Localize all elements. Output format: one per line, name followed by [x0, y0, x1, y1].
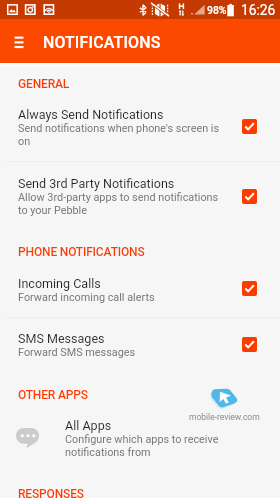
staticText: RESPONSES: [18, 487, 84, 498]
staticText: Configure which apps to receive notifica…: [65, 433, 219, 459]
staticText: PHONE NOTIFICATIONS: [18, 245, 145, 259]
button[interactable]: All Apps: [0, 412, 280, 464]
staticText: SMS Messages: [18, 331, 105, 346]
staticText: OTHER APPS: [18, 388, 88, 402]
button[interactable]: Send 3rd Party Notifications: [0, 170, 280, 230]
staticText: mobile-review.com: [189, 412, 260, 422]
staticText: NOTIFICATIONS: [43, 33, 161, 52]
staticText: Send 3rd Party Notifications: [18, 176, 175, 191]
staticText: Allow 3rd-party apps to send notificatio…: [18, 191, 219, 217]
staticText: 98%: [207, 4, 227, 16]
staticText: Incoming Calls: [18, 276, 101, 291]
staticText: Forward incoming call alerts: [18, 291, 155, 304]
button[interactable]: Always Send Notifications: [0, 101, 280, 161]
staticText: GENERAL: [18, 77, 70, 91]
staticText: Send notifications when phone's screen i…: [18, 122, 220, 148]
button[interactable]: SMS Messages: [0, 325, 280, 372]
staticText: Always Send Notifications: [18, 107, 164, 122]
button[interactable]: Open navigation menu: [5, 28, 33, 56]
button[interactable]: Incoming Calls: [0, 270, 280, 317]
staticText: 16:26: [241, 2, 276, 18]
staticText: All Apps: [65, 418, 112, 433]
staticText: Forward SMS messages: [18, 346, 136, 359]
